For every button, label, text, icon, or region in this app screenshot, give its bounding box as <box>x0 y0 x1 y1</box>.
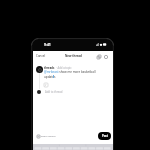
staticText: threads <box>44 66 55 70</box>
button[interactable]: Drafts <box>96 54 101 59</box>
staticText: 9:41 <box>44 42 51 47</box>
staticText: New thread <box>65 54 82 58</box>
staticText: Post <box>102 134 108 138</box>
staticText: Add to thread <box>45 90 63 94</box>
staticText: Reply options <box>41 135 56 138</box>
staticText: Cancel <box>36 54 46 58</box>
staticText: · Add a topic <box>56 66 72 70</box>
button[interactable]: Reply options <box>37 135 56 138</box>
button[interactable]: More options <box>103 54 108 59</box>
button[interactable]: Post <box>98 132 111 140</box>
button[interactable]: Attach media <box>44 83 48 87</box>
staticText: @mrbeast show me more basketball updates <box>44 70 101 79</box>
button[interactable]: Cancel <box>35 52 46 60</box>
